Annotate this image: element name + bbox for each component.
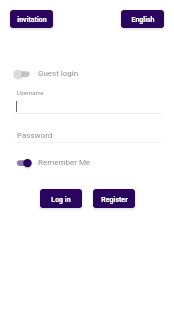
- other: Enabled: [15, 157, 34, 168]
- staticText: Guest login: [38, 69, 79, 78]
- button[interactable]: Disabled: [14, 63, 79, 83]
- button[interactable]: Log in: [40, 189, 82, 208]
- button[interactable]: English: [121, 10, 164, 28]
- staticText: Password: [17, 131, 53, 140]
- staticText: English: [131, 16, 155, 24]
- staticText: Username: [17, 90, 44, 97]
- button[interactable]: Enabled: [15, 152, 91, 172]
- button[interactable]: invitation: [10, 10, 53, 28]
- other: Disabled: [14, 68, 33, 79]
- staticText: Register: [101, 196, 128, 204]
- staticText: Remember Me: [38, 158, 91, 167]
- staticText: Log in: [51, 196, 71, 204]
- staticText: invitation: [17, 16, 47, 24]
- button[interactable]: Register: [93, 189, 135, 208]
